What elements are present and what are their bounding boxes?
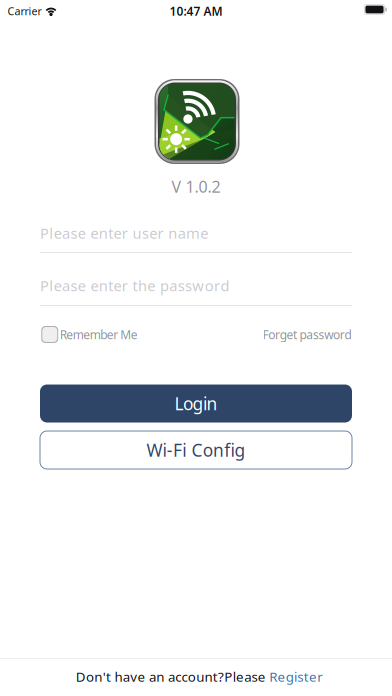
staticText: Register xyxy=(269,668,323,685)
button[interactable]: Forget password xyxy=(263,324,351,344)
staticText: V 1.0.2 xyxy=(171,176,220,197)
staticText: Login xyxy=(174,392,218,415)
staticText: Carrier xyxy=(7,4,41,18)
staticText: Please enter user name xyxy=(40,223,208,243)
button[interactable]: Login xyxy=(40,384,352,422)
staticText: Please enter the password xyxy=(40,276,229,295)
button[interactable]: Wi-Fi Config xyxy=(40,431,352,469)
staticText: Don't have an account?Please xyxy=(76,668,269,685)
staticText: Forget password xyxy=(263,326,351,342)
staticText: 10:47 AM xyxy=(169,3,222,19)
button[interactable]: Register xyxy=(269,668,323,685)
staticText: Remember Me xyxy=(60,326,138,342)
staticText: Wi-Fi Config xyxy=(146,438,246,461)
button[interactable]: Remember Me xyxy=(41,324,138,344)
